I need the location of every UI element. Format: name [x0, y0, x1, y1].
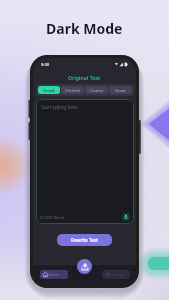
staticText: Home — [49, 272, 59, 277]
staticText: Simple — [43, 88, 55, 93]
button[interactable]: Upload — [77, 259, 92, 274]
staticText: Rewrite Text — [71, 237, 98, 243]
staticText: Smart — [115, 88, 126, 93]
button[interactable]: Voice input — [122, 213, 130, 221]
button[interactable]: Home — [43, 270, 65, 279]
button[interactable]: Simple — [38, 86, 60, 94]
staticText: Dark Mode — [46, 19, 123, 38]
staticText: 0/5000 Words — [40, 215, 65, 220]
staticText: 9:30 — [41, 62, 49, 67]
staticText: Original Text — [68, 74, 101, 81]
staticText: Start typing here... — [41, 104, 81, 110]
button[interactable]: Settings — [105, 270, 127, 279]
staticText: Creative — [89, 88, 104, 93]
staticText: Settings — [111, 272, 124, 277]
button[interactable]: Smart — [109, 86, 132, 94]
button[interactable]: Rewrite Text — [57, 234, 112, 246]
button[interactable]: Detailed — [61, 86, 84, 94]
staticText: Detailed — [65, 88, 80, 93]
button[interactable]: Creative — [85, 86, 108, 94]
